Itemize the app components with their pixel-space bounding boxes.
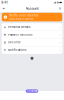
- staticText: Finish setup to continue: [9, 18, 33, 20]
- staticText: Security: [8, 41, 20, 44]
- staticText: Account: [25, 6, 38, 11]
- staticText: Payment methods: [8, 33, 32, 36]
- staticText: Continue: [27, 90, 37, 93]
- button[interactable]: Settings: [57, 5, 63, 12]
- button[interactable]: Continue: [26, 89, 38, 93]
- button[interactable]: Verify your identity: [2, 13, 62, 21]
- button[interactable]: Security: [2, 39, 62, 46]
- staticText: ›: [59, 33, 60, 37]
- staticText: Verify your identity: [9, 14, 39, 17]
- staticText: ›: [59, 40, 60, 44]
- button[interactable]: Payment methods: [2, 31, 62, 38]
- staticText: ›: [59, 48, 60, 52]
- staticText: 9:41: [1, 1, 7, 4]
- staticText: Notifications: [8, 48, 26, 52]
- staticText: ›: [59, 25, 60, 29]
- button[interactable]: Notifications: [2, 46, 62, 54]
- button[interactable]: Personal details: [2, 23, 62, 31]
- staticText: Personal details: [8, 25, 30, 28]
- button[interactable]: Back: [1, 5, 7, 12]
